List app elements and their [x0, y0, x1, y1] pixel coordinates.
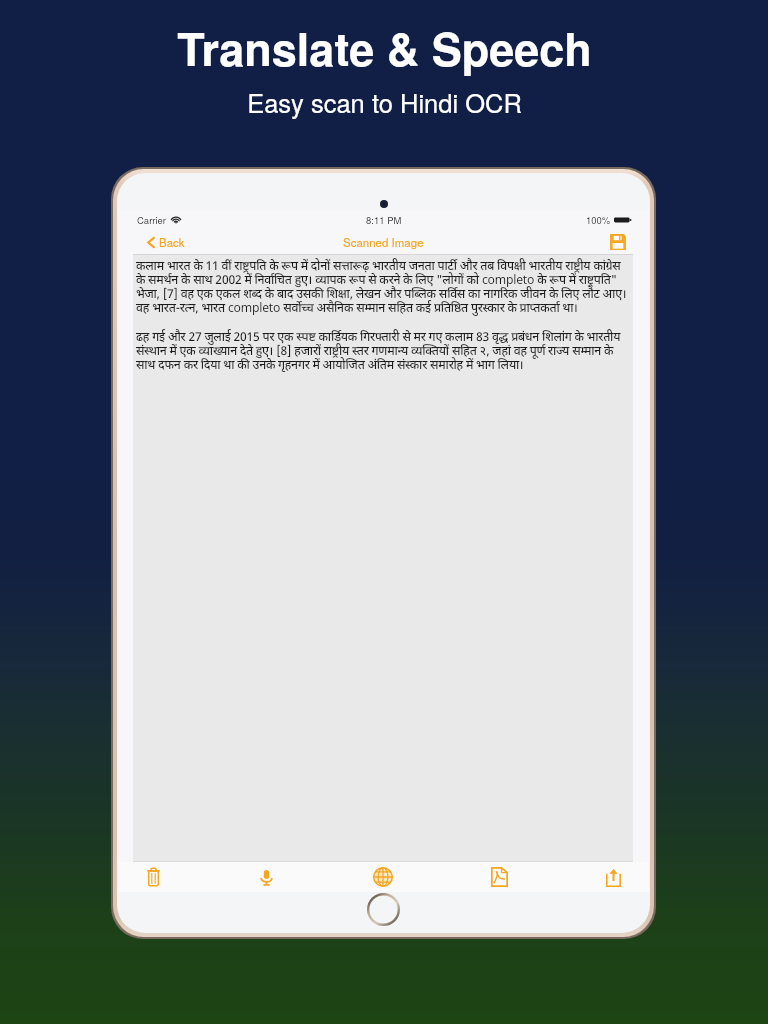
staticText: Translate & Speech: [177, 15, 592, 79]
button[interactable]: Speak: [258, 862, 275, 892]
button[interactable]: Translate: [373, 862, 393, 892]
staticText: Scanned Image: [343, 234, 424, 250]
button[interactable]: Delete: [147, 862, 160, 892]
staticText: कलाम भारत के 11 वीं राष्ट्रपति के रूप मे…: [136, 257, 631, 316]
button[interactable]: Back: [143, 231, 189, 253]
staticText: Easy scan to Hindi OCR: [247, 84, 522, 121]
staticText: 100%: [586, 213, 611, 227]
staticText: Back: [159, 234, 185, 250]
staticText: 8:11 PM: [366, 213, 402, 227]
button[interactable]: Export PDF: [491, 862, 508, 892]
button[interactable]: Save: [609, 233, 627, 251]
button[interactable]: Home: [367, 893, 400, 926]
button[interactable]: Share: [606, 862, 621, 892]
staticText: ढह गई और 27 जुलाई 2015 पर एक स्पष्ट कार्…: [136, 328, 631, 373]
staticText: Carrier: [137, 213, 167, 227]
